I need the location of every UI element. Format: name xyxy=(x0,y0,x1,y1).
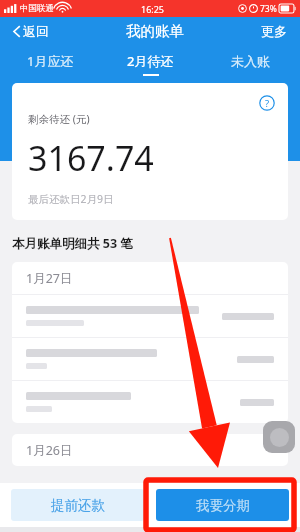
button[interactable]: Help xyxy=(259,95,275,111)
staticText: 3167.74 xyxy=(28,135,154,181)
staticText: 我的账单 xyxy=(126,22,184,40)
staticText: 剩余待还 (元) xyxy=(28,112,90,126)
button[interactable]: Floating action xyxy=(263,421,295,453)
staticText: 更多 xyxy=(261,23,287,39)
staticText: 73% xyxy=(260,3,277,15)
button[interactable] xyxy=(12,338,288,380)
staticText: 1月26日 xyxy=(26,442,73,459)
staticText: 中国联通 xyxy=(20,3,54,14)
staticText: ? xyxy=(265,97,270,110)
staticText: 我要分期 xyxy=(196,497,250,514)
staticText: 1月27日 xyxy=(26,270,73,287)
button[interactable]: 未入账 xyxy=(200,45,300,83)
staticText: 未入账 xyxy=(231,53,270,69)
staticText: 16:25 xyxy=(141,3,165,15)
staticText: 返回 xyxy=(23,23,49,39)
button[interactable]: Help xyxy=(12,83,288,220)
staticText: 最后还款日2月9日 xyxy=(28,192,114,206)
staticText: 1月应还 xyxy=(27,52,74,70)
staticText: 本月账单明细共 53 笔 xyxy=(12,235,133,252)
button[interactable]: 提前还款 xyxy=(11,489,144,521)
button[interactable]: 返回 xyxy=(10,20,52,42)
button[interactable]: 1月应还 xyxy=(0,45,100,83)
staticText: 2月待还 xyxy=(127,52,174,70)
button[interactable] xyxy=(12,295,288,337)
button[interactable]: 我要分期 xyxy=(156,489,289,521)
staticText: 提前还款 xyxy=(51,497,105,514)
button[interactable]: 更多 xyxy=(258,20,290,42)
button[interactable] xyxy=(12,381,288,423)
button[interactable]: 2月待还 xyxy=(100,45,200,83)
